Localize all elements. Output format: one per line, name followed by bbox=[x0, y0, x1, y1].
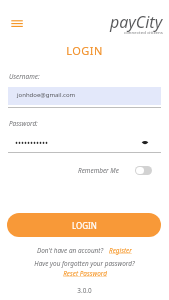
staticText: ••••••••••• bbox=[15, 137, 49, 148]
button[interactable]: jonhdoe@gmail.com bbox=[8, 87, 161, 105]
staticText: 3.0.0 bbox=[77, 286, 92, 295]
button[interactable]: Reset Password bbox=[62, 268, 108, 279]
staticText: Have you forgotten your password? bbox=[34, 259, 135, 268]
staticText: payCity bbox=[110, 11, 163, 33]
staticText: jonhdoe@gmail.com bbox=[17, 91, 76, 99]
staticText: LOGIN bbox=[72, 220, 97, 231]
staticText: Password: bbox=[9, 119, 38, 128]
button[interactable] bbox=[135, 166, 152, 175]
button[interactable]: Menu bbox=[8, 15, 24, 31]
staticText: Don't have an account? bbox=[37, 246, 104, 255]
staticText: LOGIN bbox=[0, 43, 169, 58]
button[interactable]: Show password bbox=[140, 138, 150, 148]
staticText: Username: bbox=[9, 72, 40, 81]
staticText: connected citizens bbox=[124, 29, 163, 35]
button[interactable]: LOGIN bbox=[7, 213, 161, 237]
button[interactable]: ••••••••••• bbox=[8, 135, 161, 150]
button[interactable]: Register bbox=[108, 245, 133, 256]
staticText: Remember Me bbox=[78, 166, 119, 175]
